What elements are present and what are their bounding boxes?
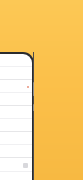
other: Power button [33,82,34,96]
button[interactable] [0,132,32,145]
button[interactable] [0,106,32,119]
button[interactable] [0,60,32,67]
button[interactable] [0,80,32,93]
button[interactable] [0,119,32,132]
button[interactable] [0,158,32,172]
button[interactable] [0,145,32,158]
button[interactable] [0,93,32,106]
button[interactable] [0,67,32,80]
